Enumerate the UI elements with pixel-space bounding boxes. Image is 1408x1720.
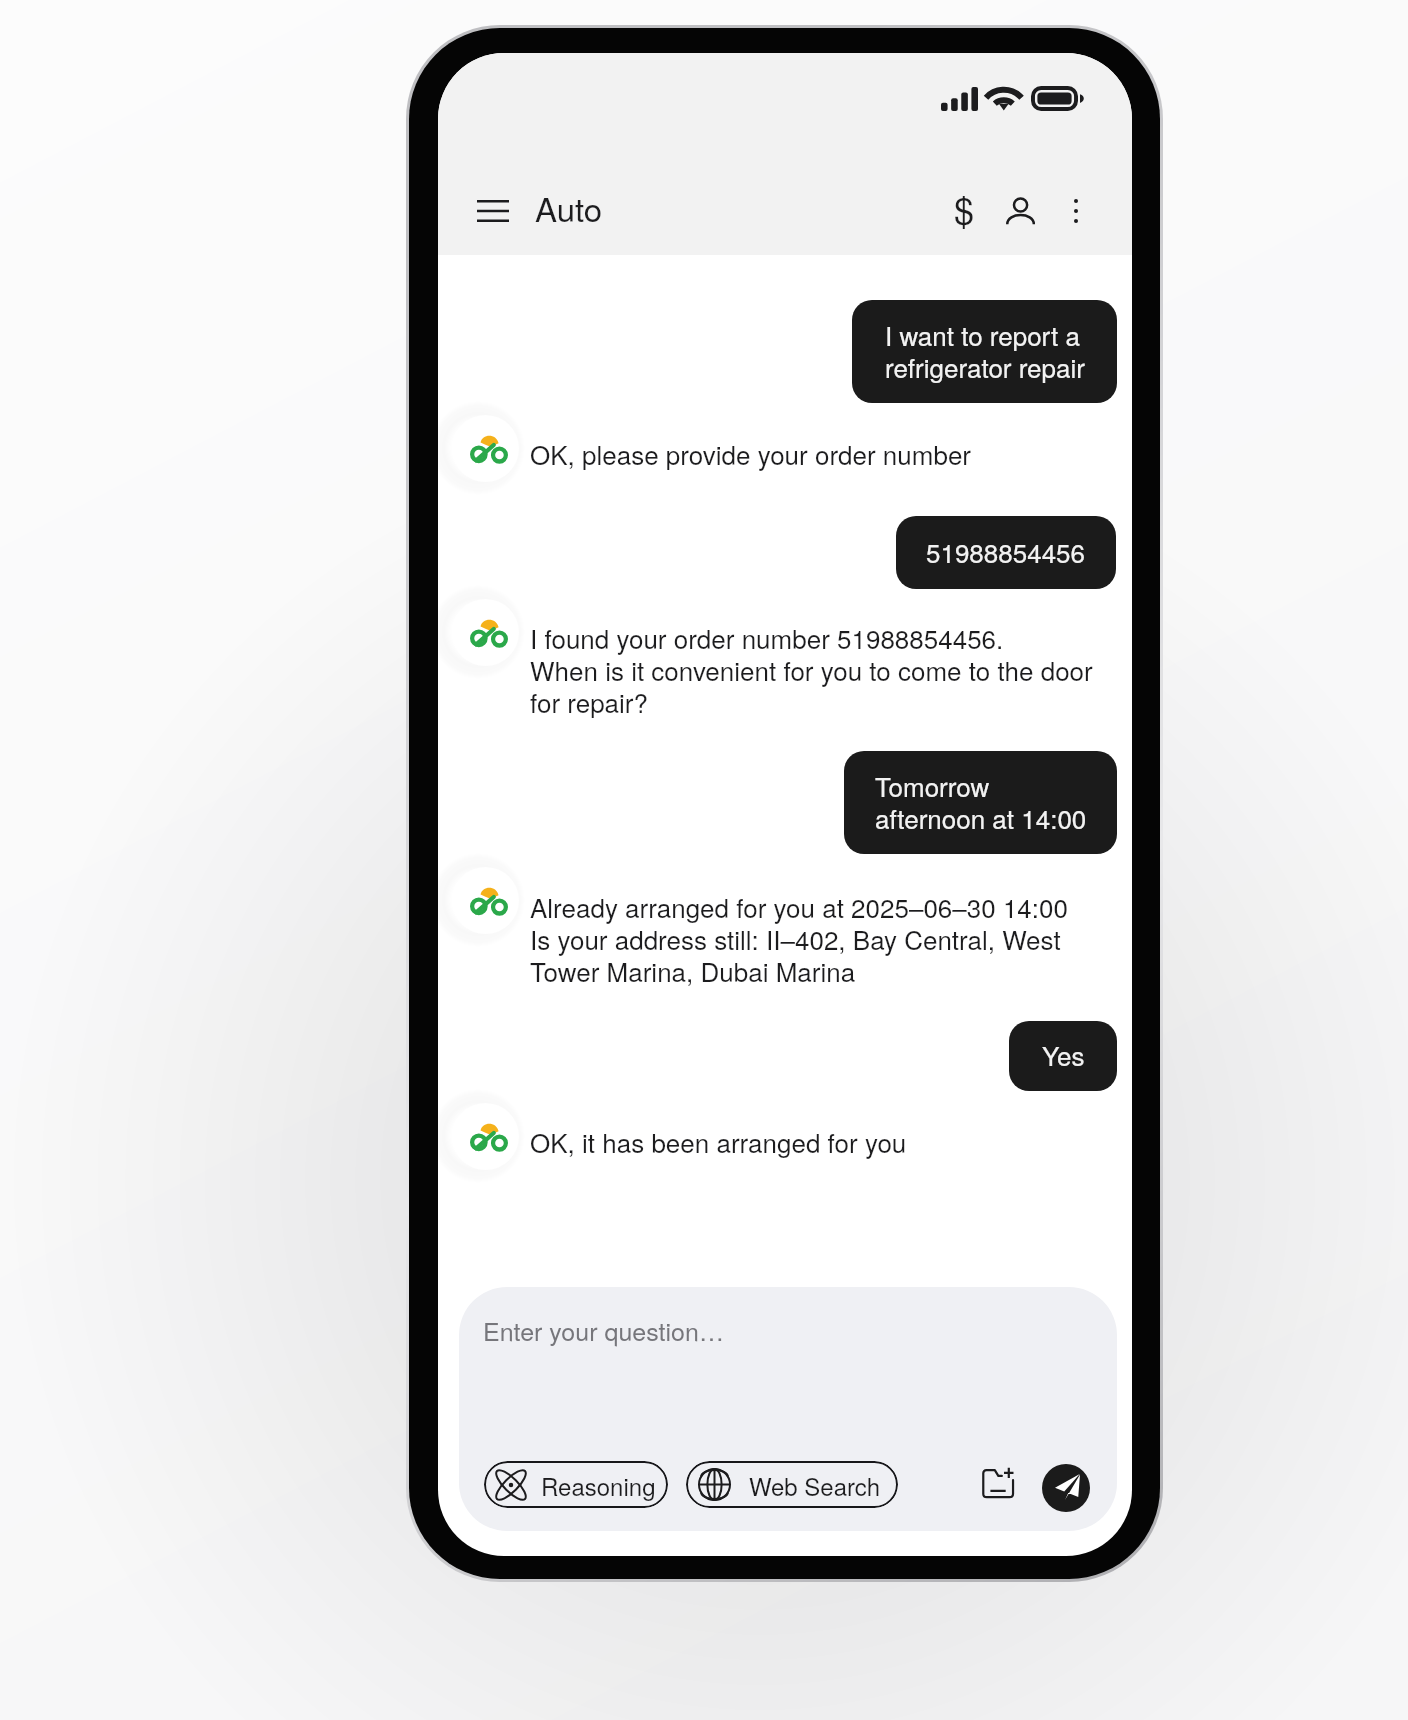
staticText: I found your order number 51988854456. W…	[530, 623, 1093, 719]
staticText: 51988854456	[926, 537, 1086, 569]
button[interactable]: Yes	[1009, 1021, 1117, 1091]
button[interactable]: More options	[1047, 183, 1105, 239]
button[interactable]: Web Search	[686, 1461, 898, 1508]
staticText: Already arranged for you at 2025–06–30 1…	[530, 892, 1068, 988]
staticText: I want to report a refrigerator repair	[885, 320, 1085, 384]
staticText: Auto	[535, 184, 603, 231]
button[interactable]: 51988854456	[896, 516, 1116, 589]
button[interactable]: Reasoning	[484, 1461, 668, 1508]
staticText: OK, please provide your order number	[530, 439, 972, 471]
staticText: $	[954, 183, 975, 235]
staticText: OK, it has been arranged for you	[530, 1127, 907, 1159]
button[interactable]: Menu	[452, 181, 534, 241]
staticText: Reasoning	[541, 1468, 656, 1502]
button[interactable]: Attach file	[971, 1455, 1025, 1509]
button[interactable]: I want to report a refrigerator repair	[852, 300, 1117, 403]
button[interactable]: Account	[990, 183, 1050, 239]
button[interactable]: Credits	[928, 181, 1000, 237]
staticText: Enter your question…	[483, 1316, 724, 1347]
staticText: Tomorrow afternoon at 14:00	[875, 771, 1087, 835]
button[interactable]: Send	[1042, 1464, 1090, 1512]
button[interactable]: Tomorrow afternoon at 14:00	[844, 751, 1117, 854]
staticText: Yes	[1042, 1040, 1085, 1072]
staticText: Web Search	[749, 1468, 881, 1502]
